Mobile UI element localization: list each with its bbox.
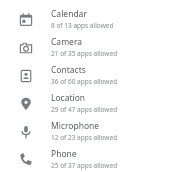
button[interactable]: Location [0, 89, 172, 117]
staticText: Contacts [51, 64, 86, 76]
staticText: 8 of 13 apps allowed [51, 21, 114, 30]
button[interactable]: Phone [0, 145, 172, 172]
staticText: Phone [51, 148, 77, 160]
staticText: Location [51, 92, 86, 104]
staticText: 12 of 23 apps allowed [51, 133, 118, 142]
button[interactable]: Calendar [0, 5, 172, 33]
staticText: Camera [51, 36, 82, 48]
button[interactable]: Camera [0, 33, 172, 61]
staticText: 21 of 35 apps allowed [51, 49, 118, 58]
staticText: Calendar [51, 8, 87, 20]
staticText: 25 of 37 apps allowed [51, 161, 118, 170]
staticText: Microphone [51, 120, 100, 132]
button[interactable]: Contacts [0, 61, 172, 89]
staticText: 36 of 60 apps allowed [51, 77, 118, 86]
staticText: 29 of 47 apps allowed [51, 105, 118, 114]
button[interactable]: Microphone [0, 117, 172, 145]
